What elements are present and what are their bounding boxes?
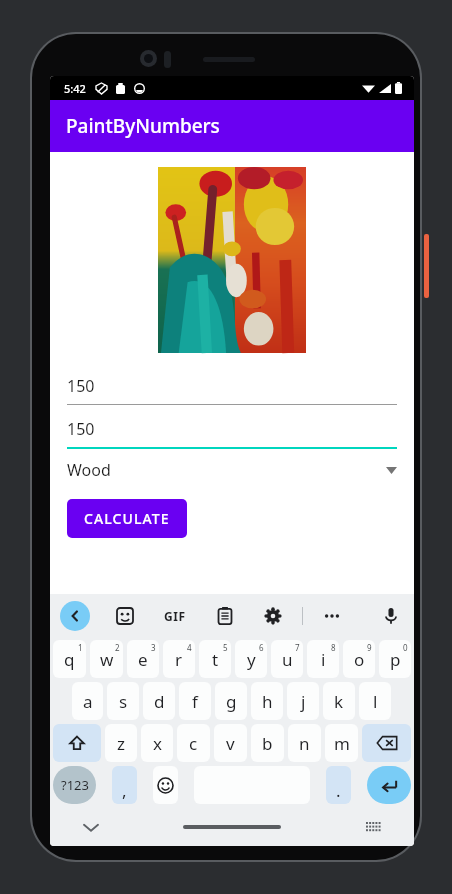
- button[interactable]: ,: [112, 766, 137, 804]
- staticText: b: [262, 732, 273, 755]
- staticText: d: [154, 690, 165, 713]
- staticText: v: [226, 732, 235, 755]
- staticText: 0: [403, 642, 408, 653]
- staticText: u: [282, 648, 293, 671]
- staticText: g: [226, 690, 237, 713]
- button[interactable]: ?123: [53, 766, 96, 804]
- button[interactable]: Clipboard: [212, 603, 238, 629]
- staticText: k: [334, 690, 344, 713]
- staticText: .: [336, 779, 341, 802]
- staticText: 150: [67, 418, 95, 440]
- button[interactable]: x: [141, 724, 173, 762]
- button[interactable]: .: [326, 766, 351, 804]
- button[interactable]: Back: [60, 601, 90, 631]
- staticText: x: [153, 732, 162, 755]
- staticText: e: [138, 648, 148, 671]
- staticText: ,: [122, 779, 127, 802]
- staticText: c: [189, 732, 198, 755]
- staticText: GIF: [164, 608, 186, 624]
- button[interactable]: More options: [319, 603, 345, 629]
- button[interactable]: a: [72, 682, 103, 720]
- button[interactable]: Stickers: [112, 603, 138, 629]
- button[interactable]: i: [307, 640, 339, 678]
- button[interactable]: Shift: [53, 724, 101, 762]
- button[interactable]: n: [288, 724, 321, 762]
- button[interactable]: Wood: [67, 459, 397, 481]
- staticText: f: [192, 690, 198, 713]
- staticText: i: [321, 648, 326, 671]
- staticText: w: [100, 648, 114, 671]
- button[interactable]: z: [105, 724, 137, 762]
- button[interactable]: v: [214, 724, 247, 762]
- button[interactable]: h: [251, 682, 283, 720]
- staticText: 2: [115, 642, 120, 653]
- staticText: a: [83, 690, 93, 713]
- button[interactable]: t: [199, 640, 231, 678]
- staticText: y: [247, 648, 256, 671]
- button[interactable]: GIF: [160, 604, 190, 628]
- staticText: 6: [259, 642, 264, 653]
- button[interactable]: y: [235, 640, 267, 678]
- button[interactable]: o: [343, 640, 375, 678]
- button[interactable]: Settings: [260, 603, 286, 629]
- button[interactable]: f: [179, 682, 211, 720]
- button[interactable]: 150: [67, 375, 397, 405]
- button[interactable]: Voice input: [378, 603, 404, 629]
- button[interactable]: Switch keyboard: [360, 814, 386, 840]
- staticText: 5:42: [64, 81, 86, 96]
- button[interactable]: Backspace: [362, 724, 411, 762]
- staticText: o: [354, 648, 365, 671]
- button[interactable]: s: [107, 682, 139, 720]
- staticText: Wood: [67, 459, 386, 481]
- staticText: n: [299, 732, 310, 755]
- button[interactable]: c: [177, 724, 210, 762]
- button[interactable]: g: [215, 682, 247, 720]
- staticText: 9: [367, 642, 372, 653]
- button[interactable]: j: [287, 682, 319, 720]
- staticText: 7: [295, 642, 300, 653]
- staticText: r: [175, 648, 183, 671]
- staticText: z: [117, 732, 125, 755]
- button[interactable]: u: [271, 640, 303, 678]
- button[interactable]: CALCULATE: [67, 499, 187, 538]
- button[interactable]: m: [325, 724, 358, 762]
- button[interactable]: d: [143, 682, 175, 720]
- staticText: s: [119, 690, 128, 713]
- staticText: CALCULATE: [84, 509, 170, 528]
- button[interactable]: 150: [67, 418, 397, 449]
- staticText: l: [373, 690, 378, 713]
- staticText: 4: [187, 642, 192, 653]
- button[interactable]: e: [127, 640, 159, 678]
- staticText: q: [64, 648, 75, 671]
- button[interactable]: k: [323, 682, 355, 720]
- staticText: 150: [67, 375, 95, 397]
- button[interactable]: p: [379, 640, 411, 678]
- button[interactable]: b: [251, 724, 284, 762]
- staticText: j: [301, 690, 306, 713]
- staticText: p: [390, 648, 401, 671]
- staticText: 8: [331, 642, 336, 653]
- staticText: ?123: [61, 776, 89, 794]
- button[interactable]: q: [53, 640, 86, 678]
- staticText: PaintByNumbers: [66, 113, 220, 139]
- button[interactable]: r: [163, 640, 195, 678]
- button[interactable]: w: [90, 640, 123, 678]
- staticText: 1: [78, 642, 83, 653]
- staticText: m: [334, 732, 350, 755]
- staticText: 3: [151, 642, 156, 653]
- staticText: t: [212, 648, 219, 671]
- staticText: h: [262, 690, 273, 713]
- button[interactable]: Hide keyboard: [78, 814, 104, 840]
- button[interactable]: Emoji: [153, 766, 178, 804]
- button[interactable]: Enter: [367, 766, 411, 804]
- button[interactable]: l: [359, 682, 391, 720]
- staticText: 5: [223, 642, 228, 653]
